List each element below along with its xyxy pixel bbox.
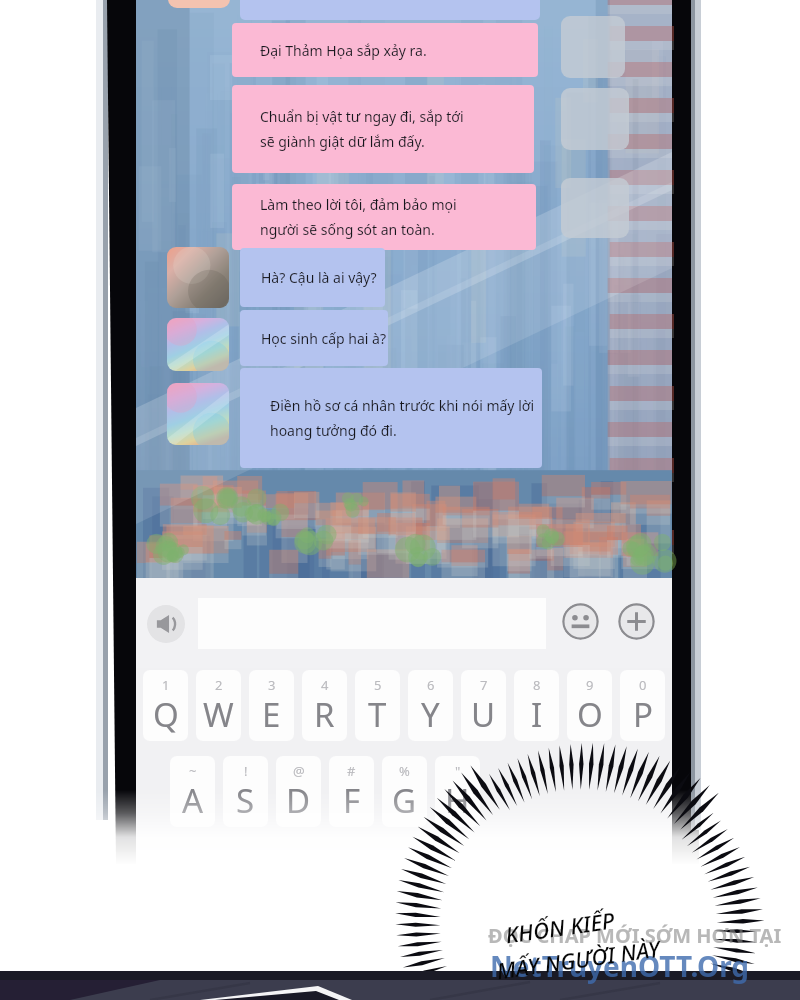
staticText: 8 — [533, 676, 541, 694]
staticText: 1 — [162, 676, 170, 694]
staticText: 9 — [586, 676, 594, 694]
button[interactable]: @ — [276, 756, 321, 827]
staticText: 5 — [374, 676, 382, 694]
button[interactable]: Profile picture — [167, 247, 229, 308]
button[interactable]: 7 — [461, 670, 506, 741]
staticText: A — [182, 778, 204, 823]
staticText: G — [392, 778, 417, 823]
staticText: U — [471, 692, 496, 737]
staticText: Q — [153, 692, 179, 737]
staticText: # — [347, 762, 356, 780]
staticText: KHỐN KIẾP — [503, 904, 616, 949]
button[interactable]: 6 — [408, 670, 453, 741]
button[interactable]: 8 — [514, 670, 559, 741]
button[interactable]: % — [382, 756, 427, 827]
button[interactable]: 5 — [355, 670, 400, 741]
staticText: Hà? Cậu là ai vậy? — [261, 268, 377, 287]
staticText: Điền hồ sơ cá nhân trước khi nói mấy lời… — [270, 396, 534, 440]
staticText: ! — [244, 762, 248, 780]
staticText: @ — [293, 762, 305, 780]
button[interactable]: ~ — [170, 756, 215, 827]
button[interactable]: 9 — [567, 670, 612, 741]
staticText: 0 — [639, 676, 647, 694]
staticText: 6 — [427, 676, 435, 694]
staticText: NetTruyenOTT.Org — [490, 947, 750, 985]
button[interactable]: " — [435, 756, 480, 827]
staticText: O — [577, 692, 603, 737]
staticText: " — [455, 762, 461, 780]
staticText: 4 — [321, 676, 329, 694]
button[interactable]: Profile picture — [167, 318, 229, 371]
staticText: Làm theo lời tôi, đảm bảo mọi người sẽ s… — [260, 195, 457, 239]
button[interactable]: Chuẩn bị vật tư ngay đi, sắp tới sẽ giàn… — [232, 85, 534, 173]
staticText: 2 — [215, 676, 223, 694]
button[interactable]: 3 — [249, 670, 294, 741]
staticText: S — [236, 778, 255, 823]
button[interactable]: Điền hồ sơ cá nhân trước khi nói mấy lời… — [240, 368, 542, 468]
staticText: T — [368, 692, 387, 737]
staticText: Học sinh cấp hai à? — [261, 329, 386, 348]
staticText: Đại Thảm Họa sắp xảy ra. — [260, 41, 427, 60]
staticText: W — [203, 692, 234, 737]
staticText: ĐỌC CHAP MỚI SỚM HƠN TẠI — [488, 922, 782, 949]
button[interactable]: Đại Thảm Họa sắp xảy ra. — [232, 23, 538, 77]
staticText: E — [262, 692, 281, 737]
button[interactable]: Profile picture — [167, 383, 229, 445]
button[interactable]: # — [329, 756, 374, 827]
button[interactable]: 2 — [196, 670, 241, 741]
button[interactable]: Học sinh cấp hai à? — [240, 310, 388, 366]
staticText: F — [343, 778, 361, 823]
staticText: R — [314, 692, 335, 737]
staticText: D — [286, 778, 311, 823]
staticText: MẤY NGƯỜI NÀY — [495, 933, 662, 985]
staticText: I — [531, 692, 543, 737]
button[interactable]: Làm theo lời tôi, đảm bảo mọi người sẽ s… — [232, 184, 536, 250]
button[interactable]: Emoji — [562, 603, 599, 640]
staticText: 3 — [268, 676, 276, 694]
staticText: Chuẩn bị vật tư ngay đi, sắp tới sẽ giàn… — [260, 107, 464, 151]
staticText: Y — [421, 692, 440, 737]
button[interactable]: Add attachment — [618, 603, 655, 640]
staticText: P — [633, 692, 653, 737]
staticText: 7 — [480, 676, 488, 694]
button[interactable]: 1 — [143, 670, 188, 741]
staticText: H — [445, 778, 470, 823]
button[interactable]: Voice message — [147, 605, 185, 643]
button[interactable]: 4 — [302, 670, 347, 741]
button[interactable]: Hà? Cậu là ai vậy? — [240, 248, 385, 307]
button[interactable]: ! — [223, 756, 268, 827]
staticText: % — [399, 762, 410, 780]
staticText: ~ — [189, 762, 197, 780]
button[interactable]: 0 — [620, 670, 665, 741]
